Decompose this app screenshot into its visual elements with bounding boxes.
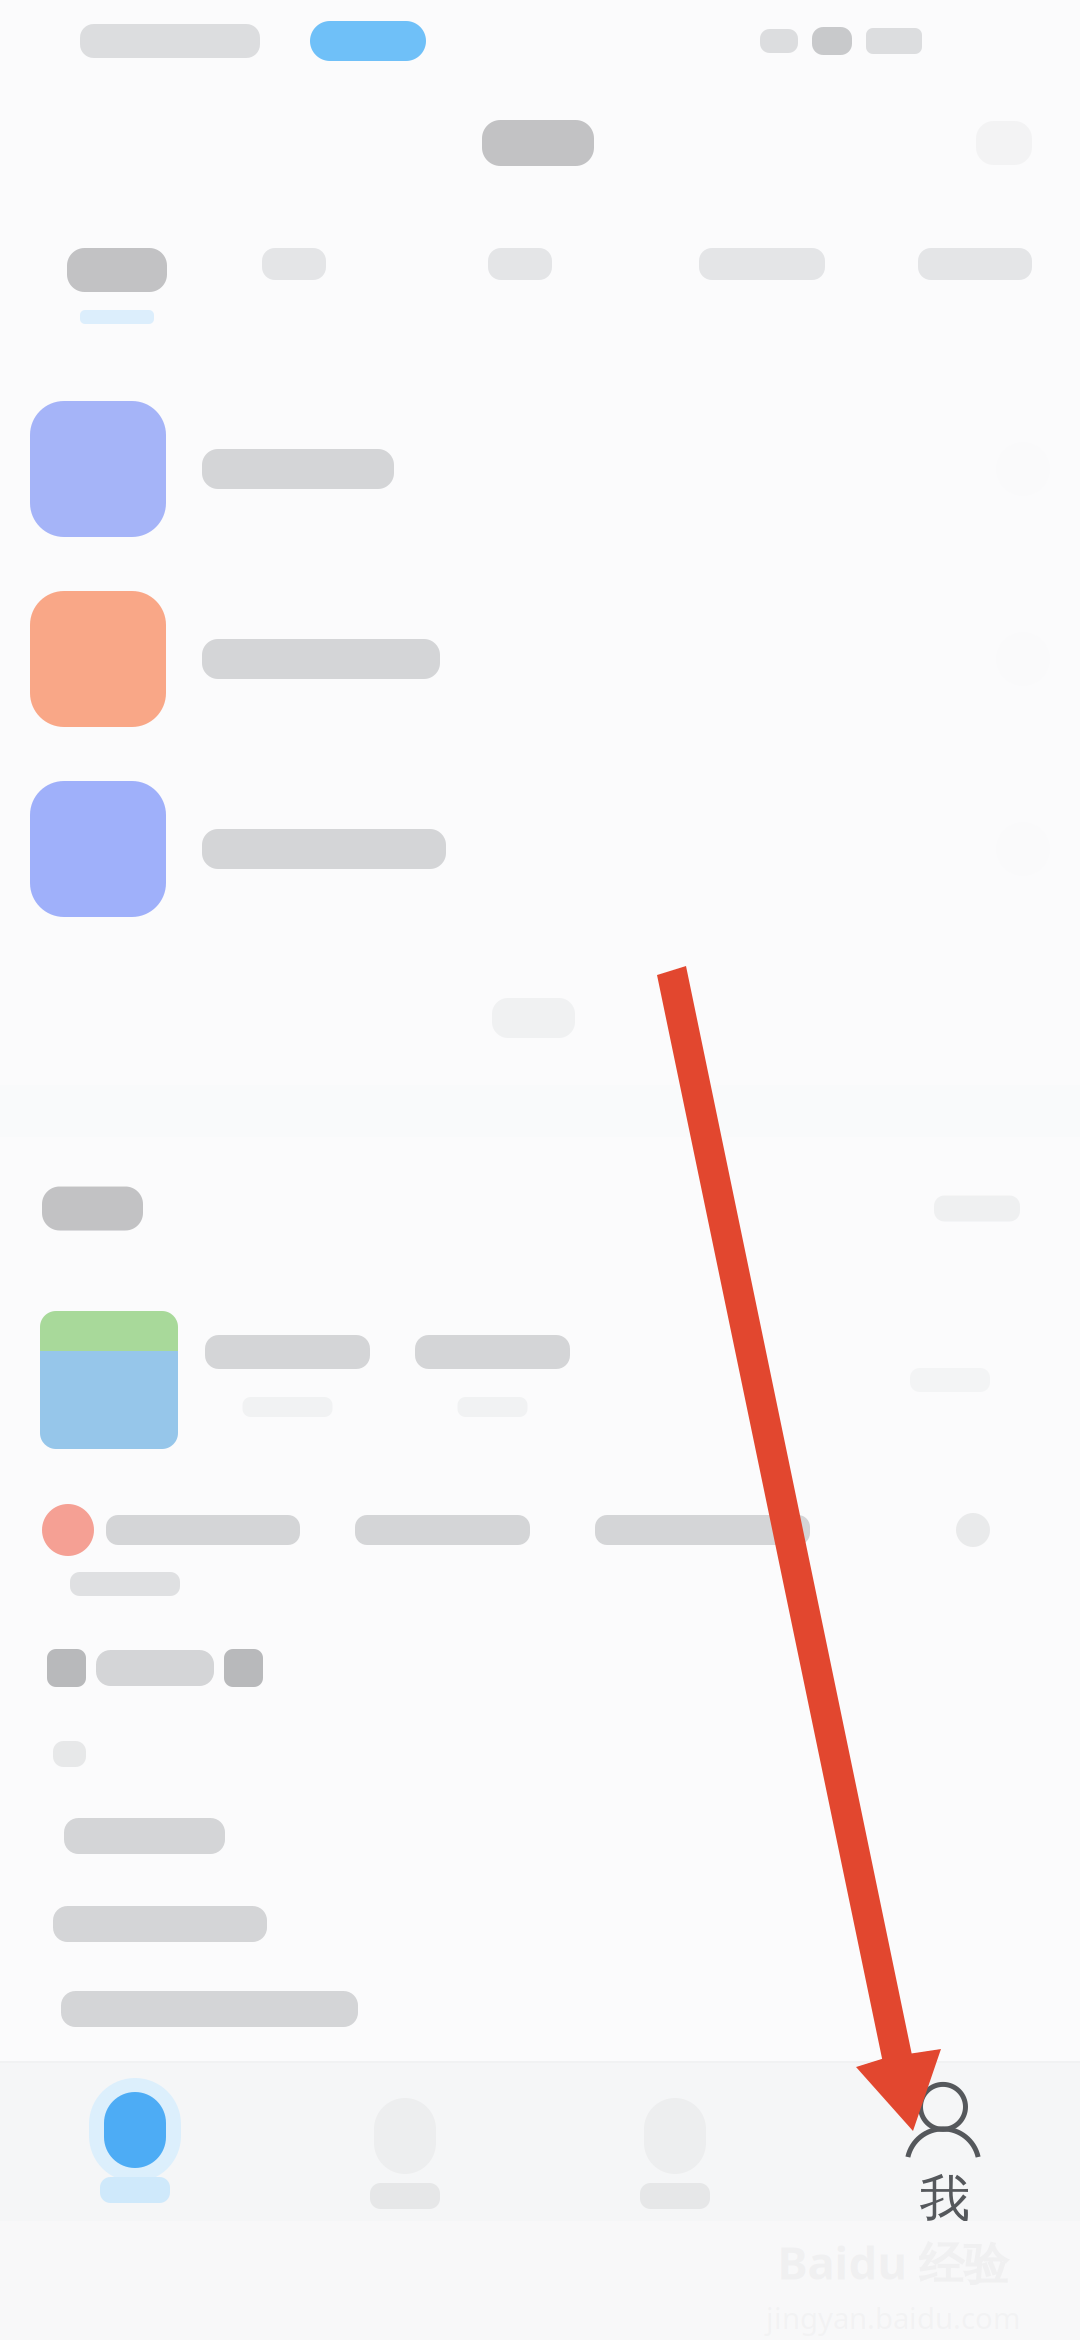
button[interactable] [0,1716,1080,1792]
button[interactable]: More options [956,101,1052,185]
button[interactable] [331,204,557,374]
button[interactable] [0,204,167,374]
button[interactable] [0,1968,1080,2050]
button[interactable]: Messages [540,2063,810,2221]
button[interactable] [0,1792,1080,1880]
button[interactable] [0,564,1080,754]
button[interactable] [557,204,825,374]
button[interactable] [0,754,1080,944]
button[interactable] [0,1480,1080,1620]
button[interactable] [825,204,1032,374]
button[interactable]: Discover [270,2063,540,2221]
button[interactable] [167,204,331,374]
button[interactable] [0,944,1080,1085]
button[interactable] [0,374,1080,564]
button[interactable]: See all [922,1183,1032,1233]
button[interactable]: 我 [810,2063,1080,2221]
button[interactable] [0,1280,1080,1480]
staticText: Baidu 经验 [777,2232,1008,2292]
staticText: 我 [919,2168,970,2230]
button[interactable] [0,1880,1080,1968]
button[interactable] [0,1620,1080,1716]
button[interactable]: Home [0,2063,270,2221]
